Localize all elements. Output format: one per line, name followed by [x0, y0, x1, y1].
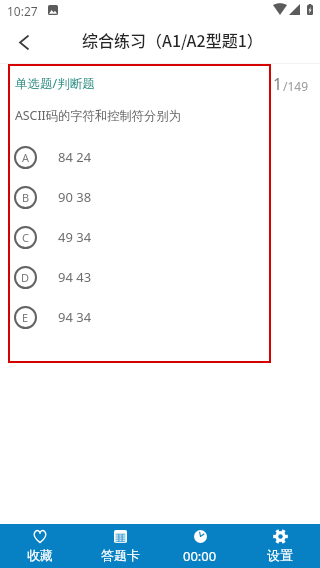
staticText: 设置	[267, 547, 293, 563]
button[interactable]: E	[14, 302, 264, 332]
button[interactable]: Timer	[160, 524, 240, 568]
staticText: 84 24	[58, 148, 92, 166]
button[interactable]: A	[14, 142, 264, 172]
button[interactable]: C	[14, 222, 264, 252]
button[interactable]: Answer card	[80, 524, 160, 568]
staticText: C	[22, 230, 29, 245]
staticText: 单选题/判断题	[15, 75, 95, 92]
button[interactable]: Favourites	[0, 524, 80, 568]
staticText: 00:00	[183, 547, 217, 565]
staticText: 90 38	[58, 188, 92, 206]
staticText: D	[21, 270, 30, 285]
button[interactable]: D	[14, 262, 264, 292]
staticText: 49 34	[58, 228, 92, 246]
button[interactable]: B	[14, 182, 264, 212]
staticText: 收藏	[27, 547, 53, 563]
staticText: 94 43	[58, 268, 92, 286]
staticText: 94 34	[58, 308, 92, 326]
staticText: ASCII码的字符和控制符分别为	[15, 107, 181, 124]
staticText: E	[22, 310, 29, 325]
button[interactable]: Settings	[240, 524, 320, 568]
button[interactable]: Back	[6, 21, 42, 63]
staticText: 10:27	[7, 3, 38, 19]
staticText: A	[22, 150, 30, 165]
staticText: 1	[273, 73, 283, 95]
staticText: B	[22, 190, 30, 205]
staticText: 综合练习（A1/A2型题1）	[82, 28, 263, 51]
staticText: /149	[283, 78, 309, 94]
staticText: 答题卡	[101, 547, 140, 563]
